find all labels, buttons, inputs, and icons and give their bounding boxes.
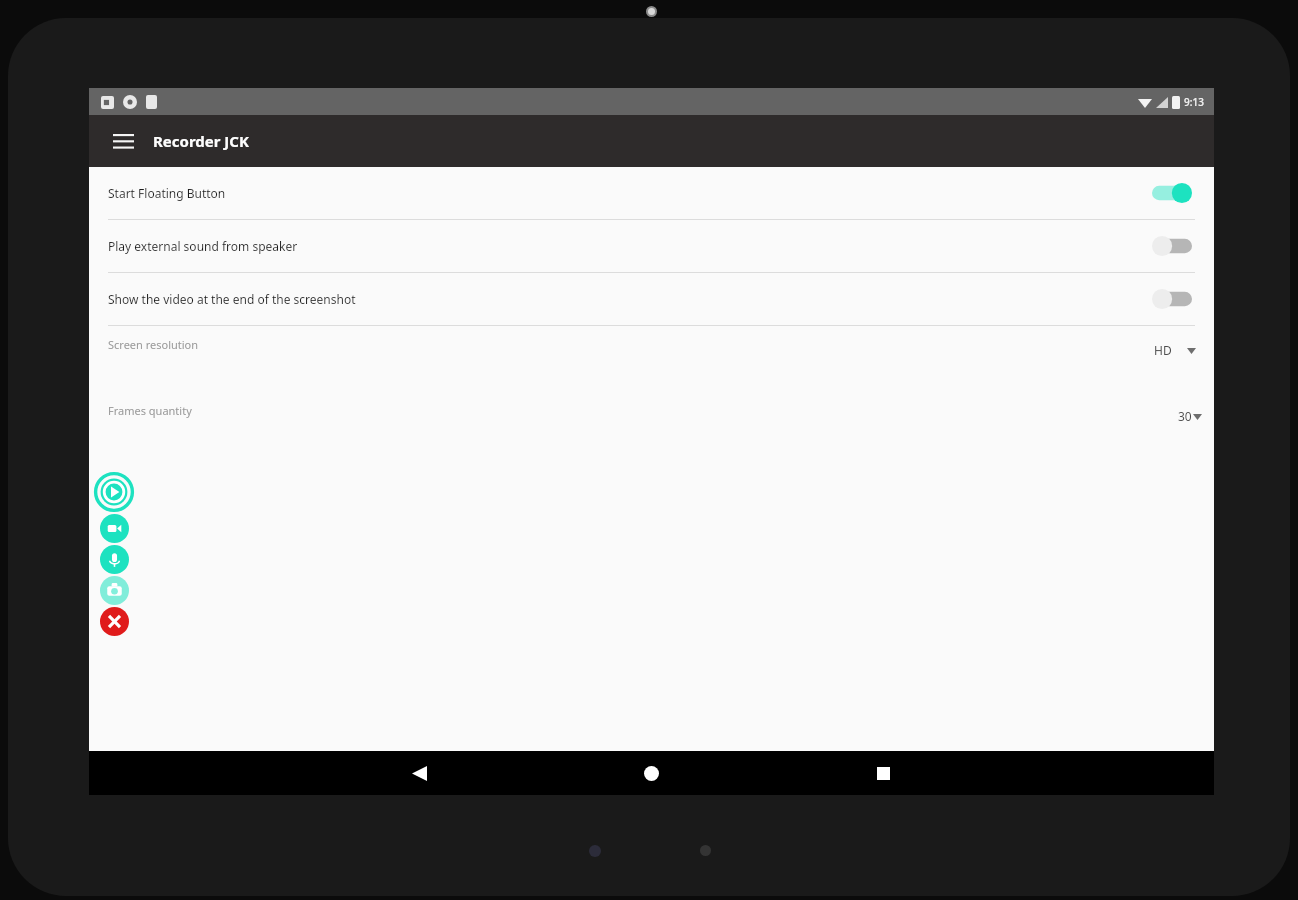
staticText: HD [1154,342,1172,358]
staticText: Play external sound from speaker [108,238,1152,254]
staticText: Start Floating Button [108,185,1152,201]
button[interactable]: Play external sound from speaker [89,220,1214,272]
button[interactable]: Toggle off [1152,234,1192,258]
button[interactable]: Start Floating Button [89,167,1214,219]
button[interactable]: Screen resolution [89,326,1214,392]
button[interactable]: Toggle on [1152,181,1192,205]
button[interactable]: Record audio [100,545,129,574]
button[interactable]: Recent apps [859,751,907,795]
staticText: 30 [1178,408,1192,424]
staticText: Recorder JCK [153,131,249,151]
button[interactable]: Toggle off [1152,287,1192,311]
staticText: Frames quantity [108,403,192,418]
button[interactable]: Back [395,751,443,795]
button[interactable]: Open navigation menu [101,119,145,163]
button[interactable]: Start recording [94,472,134,512]
button[interactable]: Show the video at the end of the screens… [89,273,1214,325]
button[interactable]: Frames quantity [89,392,1214,458]
staticText: Show the video at the end of the screens… [108,291,1152,307]
button[interactable]: Close [100,607,129,636]
button[interactable]: Record video [100,514,129,543]
button[interactable]: Home [627,751,675,795]
staticText: Screen resolution [108,337,199,352]
staticText: 9:13 [1184,95,1204,109]
button[interactable]: Take screenshot [100,576,129,605]
